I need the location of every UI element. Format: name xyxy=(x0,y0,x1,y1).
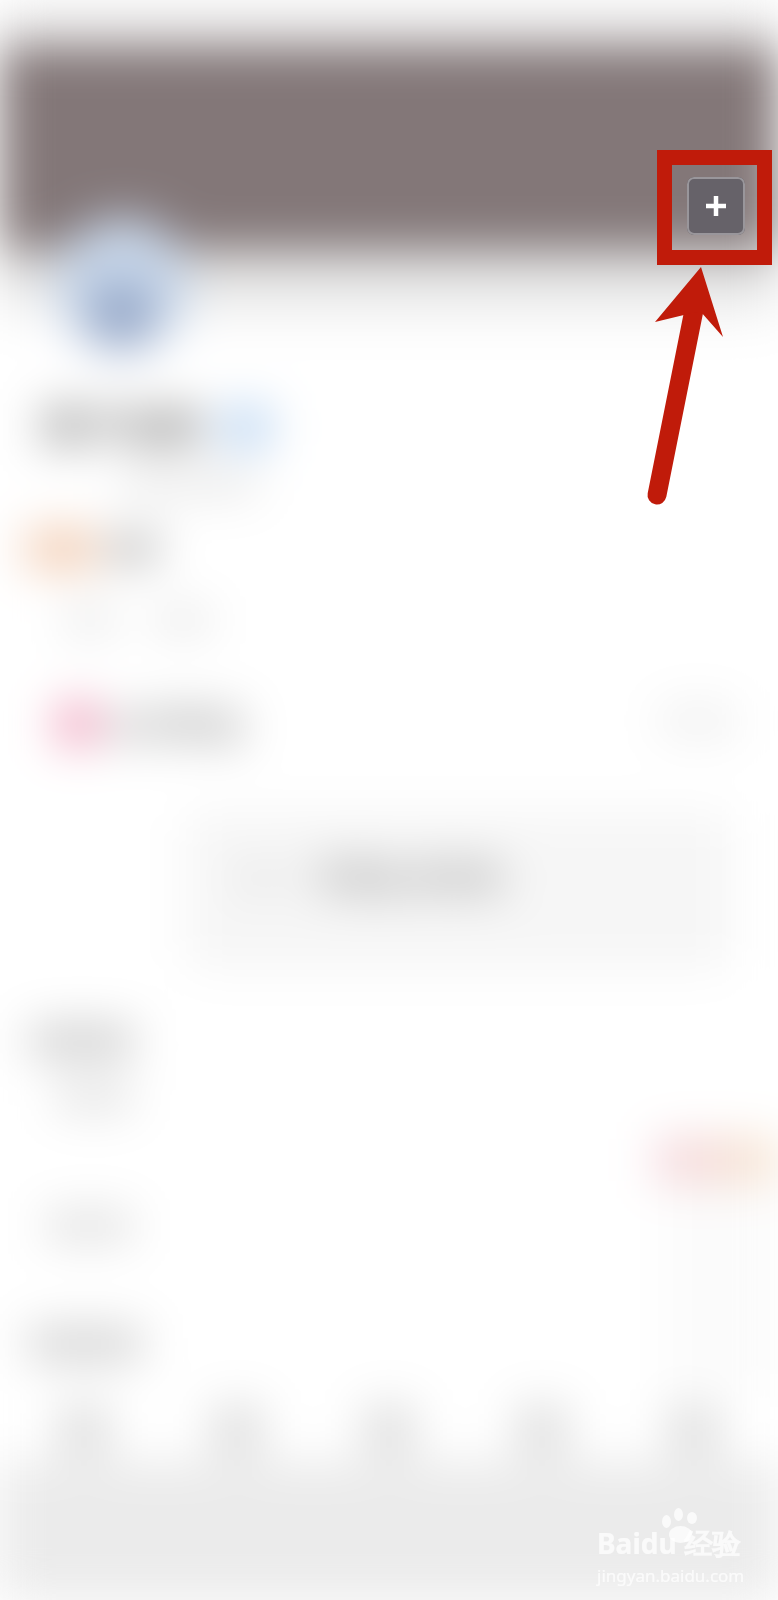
button[interactable]: Add xyxy=(687,177,745,235)
button[interactable]: 会员权益 xyxy=(54,695,778,753)
staticText: VIP xyxy=(106,527,160,571)
staticText: 会员权益 xyxy=(108,703,244,746)
button[interactable]: 用户名称 xyxy=(40,400,778,454)
button[interactable]: 开通会员特权 xyxy=(248,850,504,906)
staticText: 开通会员特权 xyxy=(312,858,504,898)
staticText: 用户名称 xyxy=(40,402,200,452)
staticText: jingyan.baidu.com xyxy=(597,1564,745,1587)
button[interactable]: VIP xyxy=(26,525,778,573)
staticText: Baidu 经验 xyxy=(597,1524,740,1562)
